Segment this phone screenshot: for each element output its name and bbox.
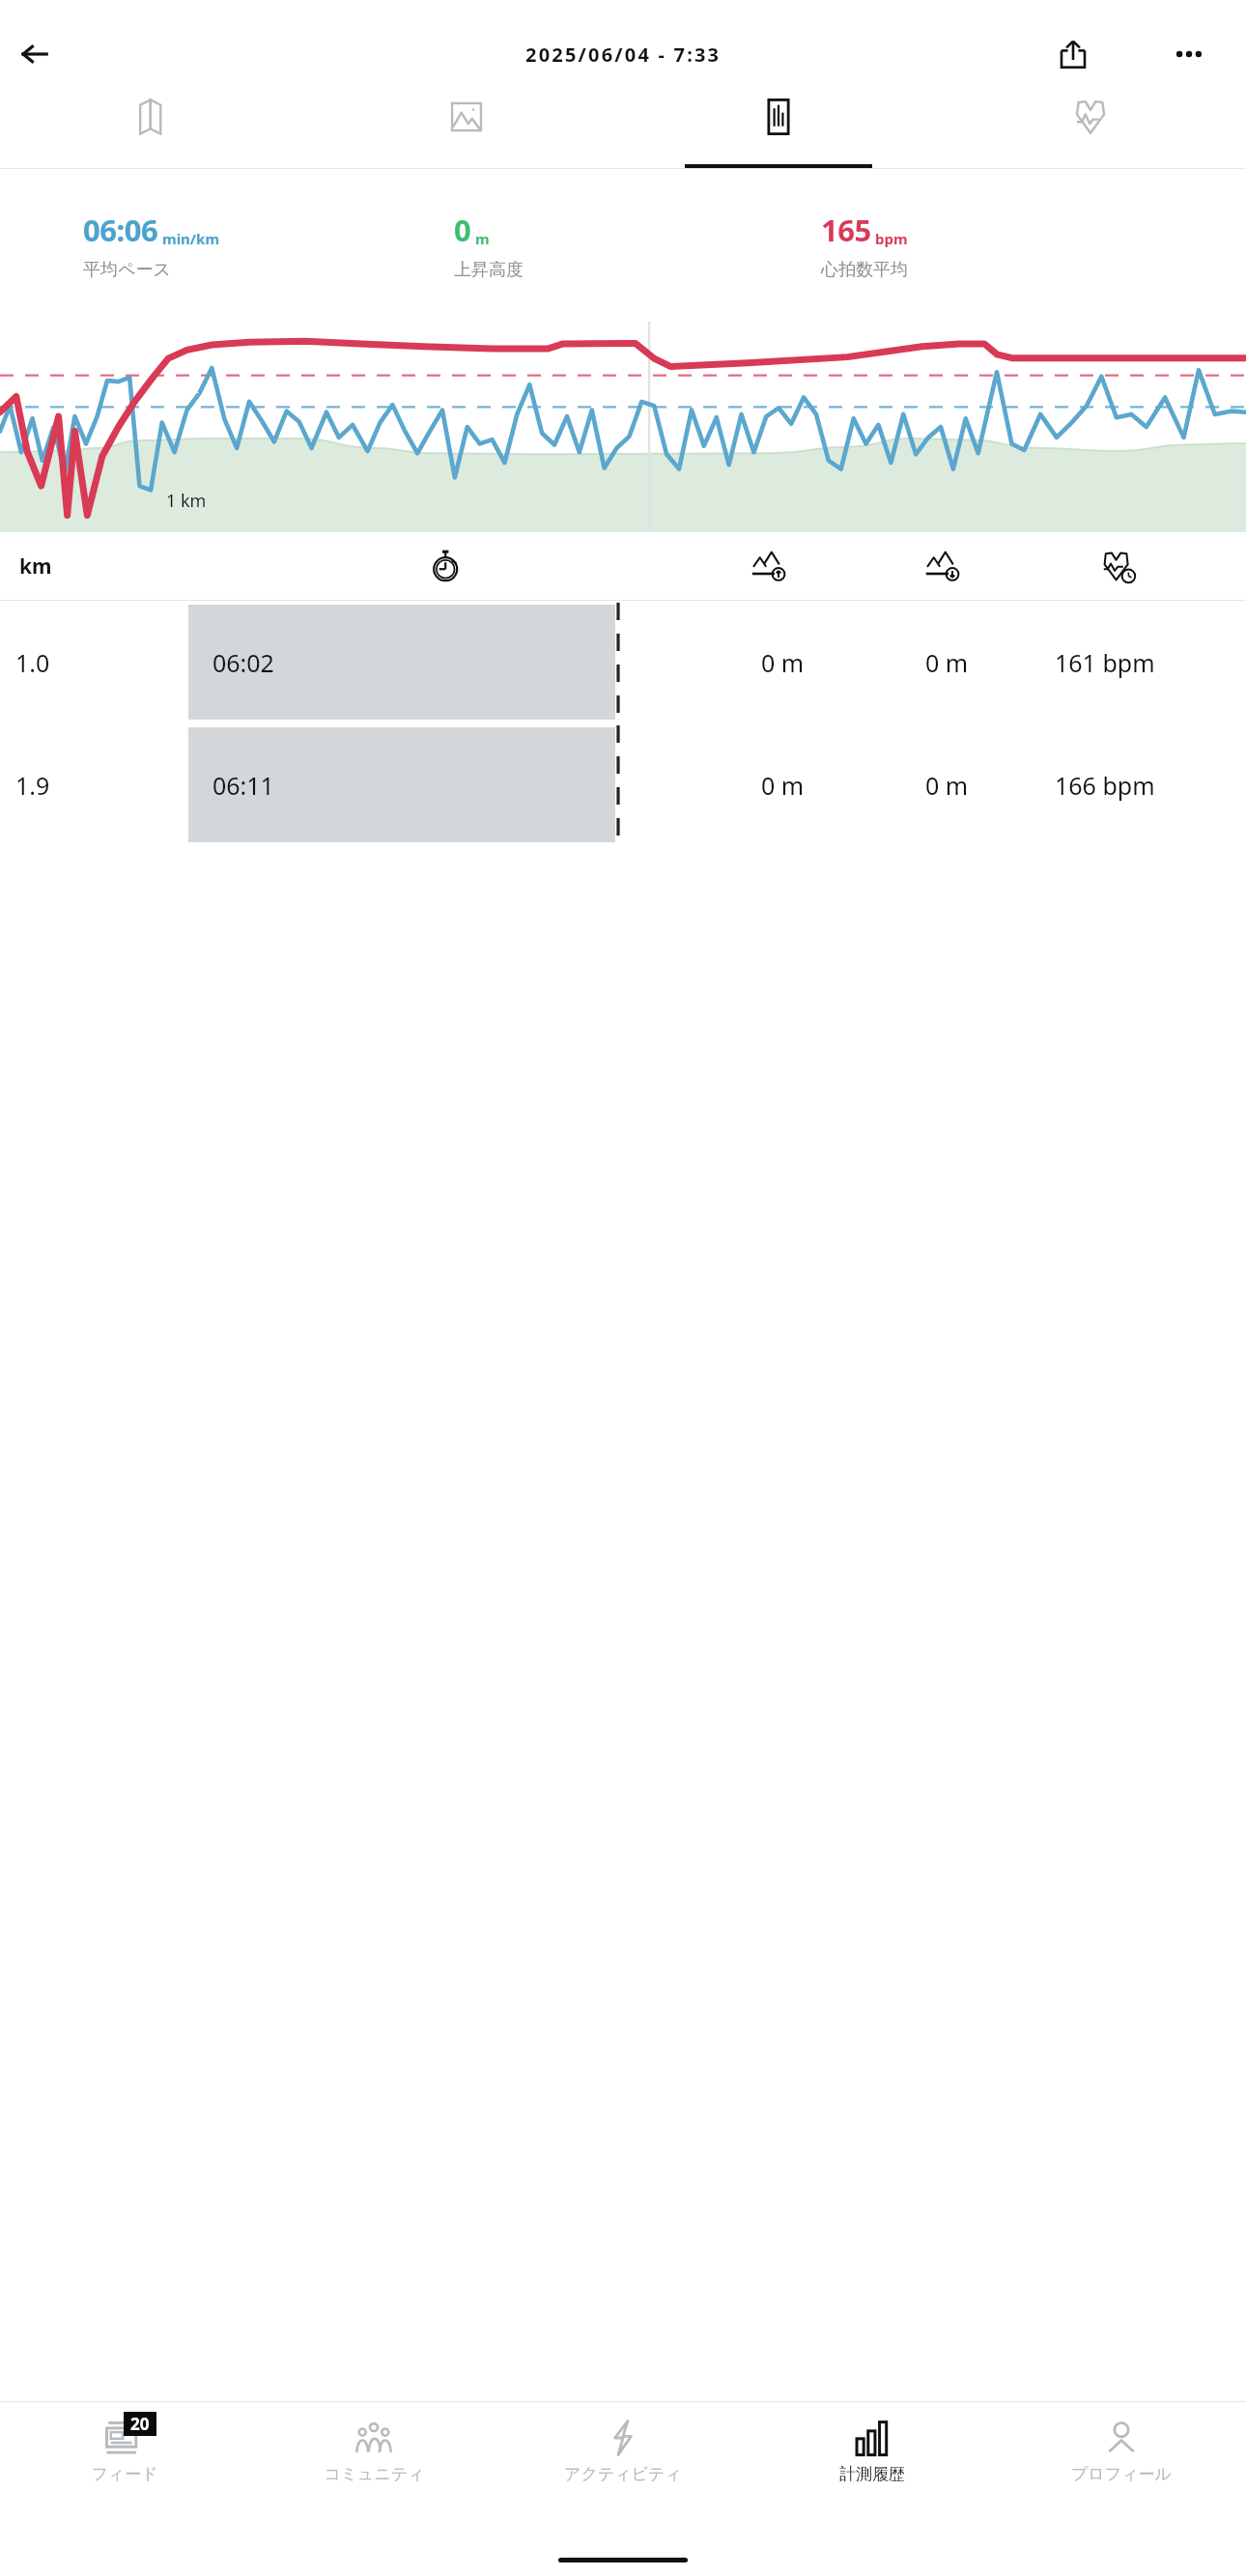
staticText: 心拍数平均 (821, 259, 908, 281)
staticText: 1 km (166, 489, 207, 513)
button[interactable]: コミュニティ (249, 2402, 498, 2518)
staticText: 1.9 (15, 769, 50, 802)
staticText: 2025/06/04 - 7:33 (525, 42, 722, 68)
button[interactable]: 1.0 (0, 601, 1246, 723)
staticText: 平均ペース (83, 259, 171, 281)
staticText: 計測履歴 (839, 2464, 905, 2484)
staticText: 06:11 (212, 769, 274, 802)
button[interactable]: 1.9 (0, 723, 1246, 846)
button[interactable]: Share (1047, 28, 1099, 80)
button[interactable]: Map (0, 85, 311, 168)
staticText: 06:02 (212, 646, 274, 679)
staticText: 161 bpm (1055, 646, 1155, 679)
button[interactable]: アクティビティ (498, 2402, 748, 2518)
button[interactable]: プロフィール (997, 2402, 1246, 2518)
button[interactable]: Heart rate (934, 85, 1246, 168)
staticText: 20 (130, 2413, 150, 2435)
staticText: 0 m (761, 769, 805, 802)
button[interactable]: Charts (622, 85, 934, 168)
staticText: 0 (454, 210, 471, 250)
staticText: km (19, 552, 52, 580)
staticText: 0 m (761, 646, 805, 679)
staticText: アクティビティ (564, 2464, 682, 2484)
button[interactable]: 20 (0, 2402, 249, 2518)
staticText: 166 bpm (1055, 769, 1155, 802)
staticText: プロフィール (1071, 2464, 1172, 2484)
button[interactable]: More options (1163, 28, 1215, 80)
staticText: 1.0 (15, 646, 50, 679)
staticText: 0 m (925, 769, 969, 802)
staticText: m (475, 229, 490, 248)
staticText: bpm (875, 229, 908, 248)
button[interactable]: Back (8, 27, 62, 81)
staticText: 06:06 (83, 210, 158, 250)
staticText: コミュニティ (324, 2464, 425, 2484)
staticText: 0 m (925, 646, 969, 679)
staticText: 上昇高度 (454, 259, 524, 281)
staticText: min/km (162, 229, 220, 248)
staticText: フィード (91, 2464, 158, 2484)
staticText: 165 (821, 210, 871, 250)
button[interactable]: 計測履歴 (748, 2402, 997, 2518)
button[interactable]: Photos (311, 85, 622, 168)
